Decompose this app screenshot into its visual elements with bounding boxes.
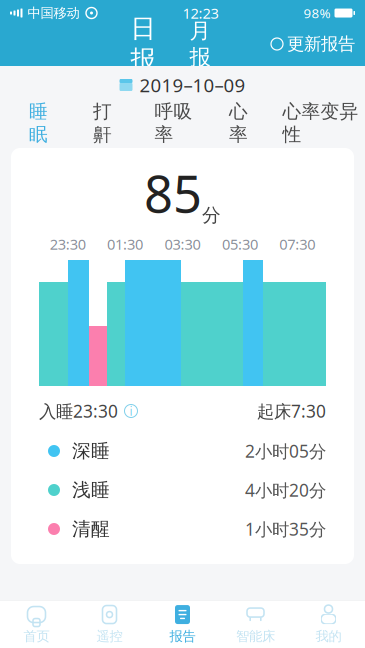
button[interactable]: 睡眠 — [20, 109, 56, 143]
staticText: 心率变异性 — [282, 100, 358, 146]
staticText: 首页 — [23, 628, 49, 644]
staticText: 分 — [202, 204, 221, 227]
staticText: 1小时35分 — [245, 517, 326, 540]
button[interactable]: 心率变异性 — [280, 109, 360, 143]
staticText: 85 — [144, 159, 202, 227]
button[interactable]: 更新报告 — [271, 27, 355, 61]
staticText: 入睡23:30 — [39, 399, 118, 422]
staticText: 起床7:30 — [257, 399, 326, 422]
staticText: 智能床 — [236, 628, 275, 644]
staticText: i — [129, 403, 132, 419]
staticText: 打鼾 — [93, 100, 112, 146]
staticText: 月报 — [189, 18, 210, 70]
staticText: 4小时20分 — [245, 478, 326, 501]
staticText: 清醒 — [72, 517, 110, 540]
staticText: 呼吸率 — [154, 100, 192, 146]
button[interactable]: 日报 — [120, 27, 166, 61]
staticText: 03:30 — [164, 234, 200, 254]
button[interactable]: 我的 — [292, 601, 365, 648]
staticText: 遥控 — [96, 628, 122, 644]
staticText: 心率 — [229, 100, 248, 146]
button[interactable]: 首页 — [0, 601, 73, 648]
staticText: 更新报告 — [287, 33, 355, 55]
staticText: 98% — [303, 4, 330, 22]
button[interactable]: 呼吸率 — [148, 109, 198, 143]
staticText: 浅睡 — [72, 478, 110, 501]
staticText: 23:30 — [50, 234, 86, 254]
staticText: 深睡 — [72, 439, 110, 462]
staticText: 我的 — [315, 628, 341, 644]
staticText: 05:30 — [222, 234, 258, 254]
button[interactable]: 智能床 — [219, 601, 292, 648]
staticText: 2019–10–09 — [139, 73, 245, 97]
staticText: 2小时05分 — [245, 439, 326, 462]
staticText: 07:30 — [279, 234, 315, 254]
staticText: 01:30 — [107, 234, 143, 254]
staticText: 日报 — [130, 13, 155, 75]
button[interactable]: 详情 — [123, 403, 139, 419]
staticText: 睡眠 — [29, 100, 48, 146]
staticText: 报告 — [169, 628, 195, 644]
button[interactable]: 2019–10–09 — [0, 66, 365, 104]
staticText: 12:23 — [182, 3, 218, 23]
button[interactable]: 打鼾 — [84, 109, 120, 143]
button[interactable]: 心率 — [220, 109, 256, 143]
staticText: 中国移动 — [27, 5, 79, 21]
button[interactable]: 遥控 — [73, 601, 146, 648]
button[interactable]: 月报 — [180, 27, 220, 61]
button[interactable]: 报告 — [146, 601, 219, 648]
